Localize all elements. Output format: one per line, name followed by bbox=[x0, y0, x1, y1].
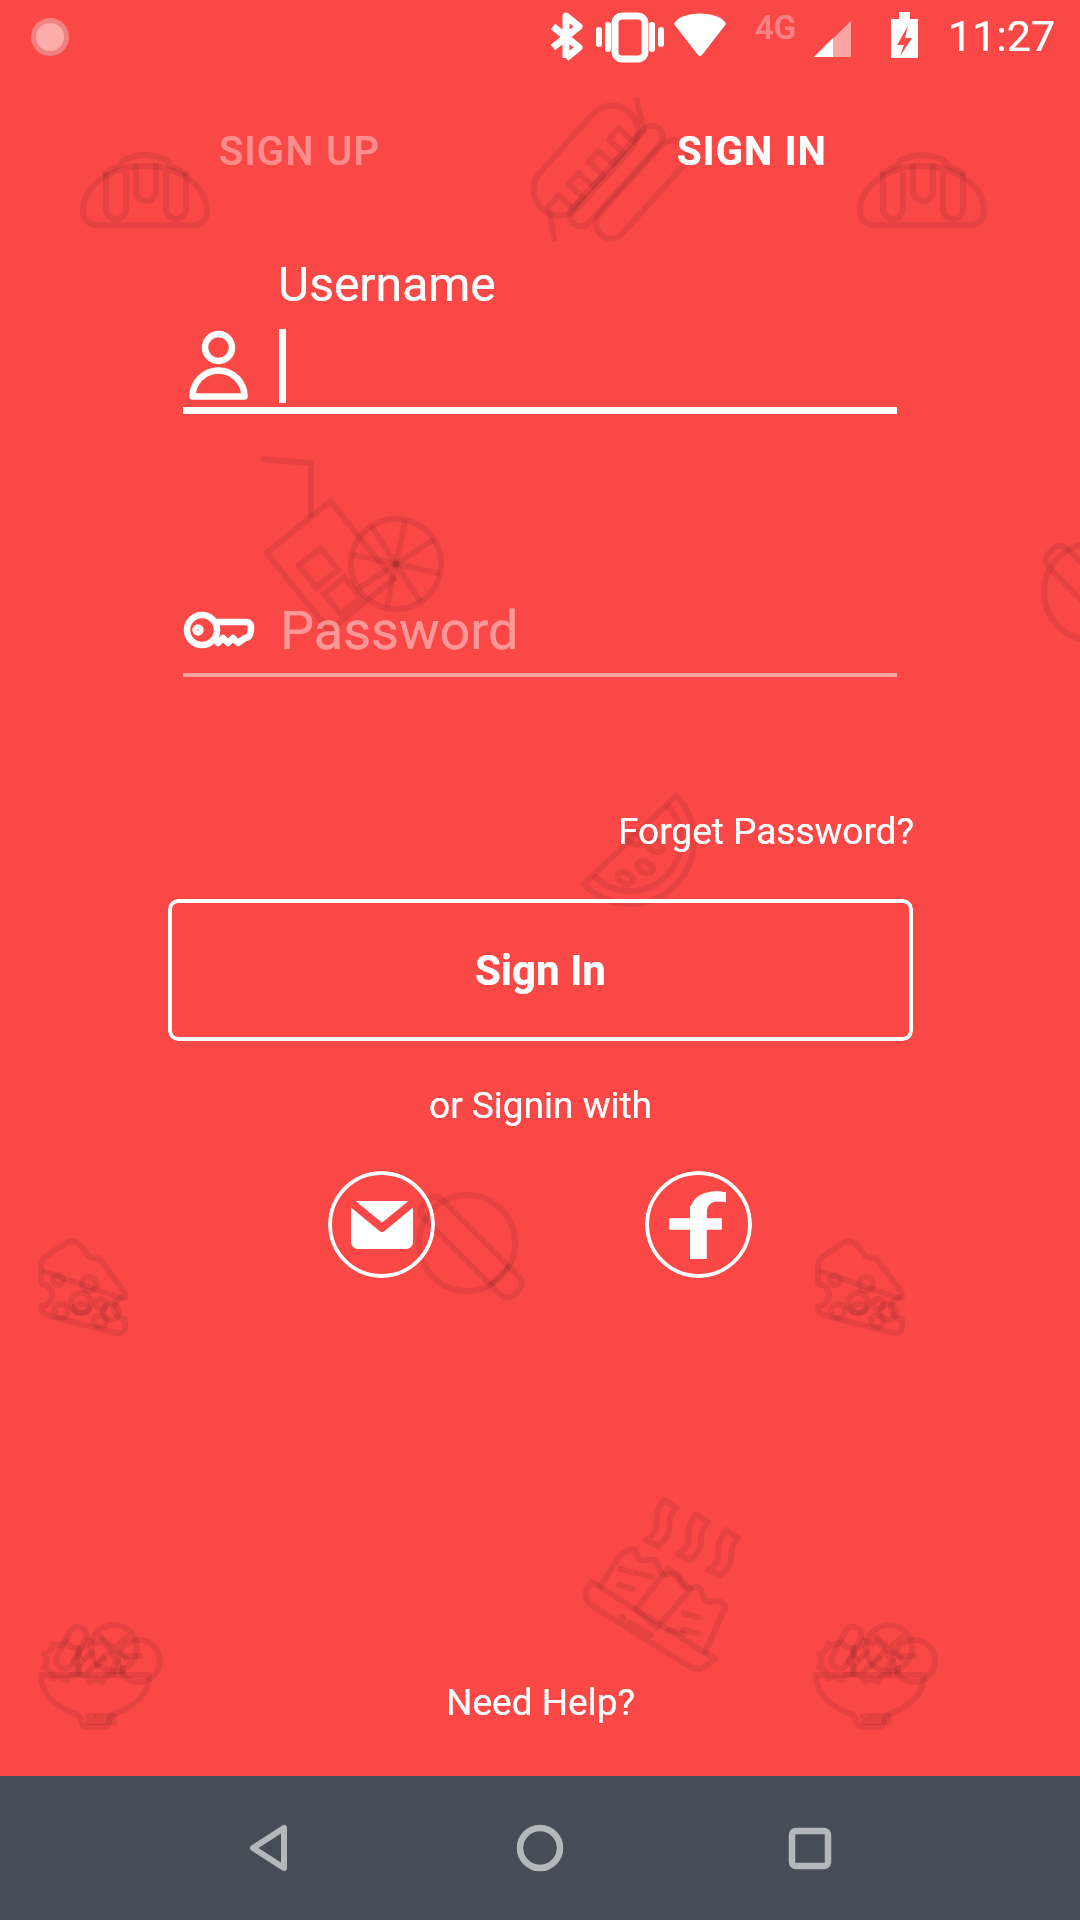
staticText: Sign In bbox=[475, 946, 606, 995]
button[interactable]: Need Help? bbox=[446, 1681, 635, 1724]
button[interactable]: SIGN UP bbox=[60, 110, 540, 192]
staticText: or Signin with bbox=[429, 1084, 652, 1127]
staticText: SIGN IN bbox=[677, 128, 828, 175]
staticText: 4G bbox=[755, 8, 797, 47]
button[interactable]: Sign in with Email bbox=[328, 1171, 435, 1278]
button[interactable]: Sign in with Facebook bbox=[645, 1171, 752, 1278]
staticText: Password bbox=[280, 599, 519, 662]
staticText: Forget Password? bbox=[618, 810, 914, 853]
button[interactable]: Sign In bbox=[168, 899, 913, 1041]
button[interactable]: Forget Password? bbox=[618, 810, 914, 853]
staticText: 11:27 bbox=[948, 11, 1056, 61]
staticText: SIGN UP bbox=[219, 128, 381, 175]
button[interactable]: SIGN IN bbox=[512, 110, 992, 192]
staticText: Need Help? bbox=[446, 1681, 635, 1724]
staticText: Username bbox=[278, 256, 496, 312]
